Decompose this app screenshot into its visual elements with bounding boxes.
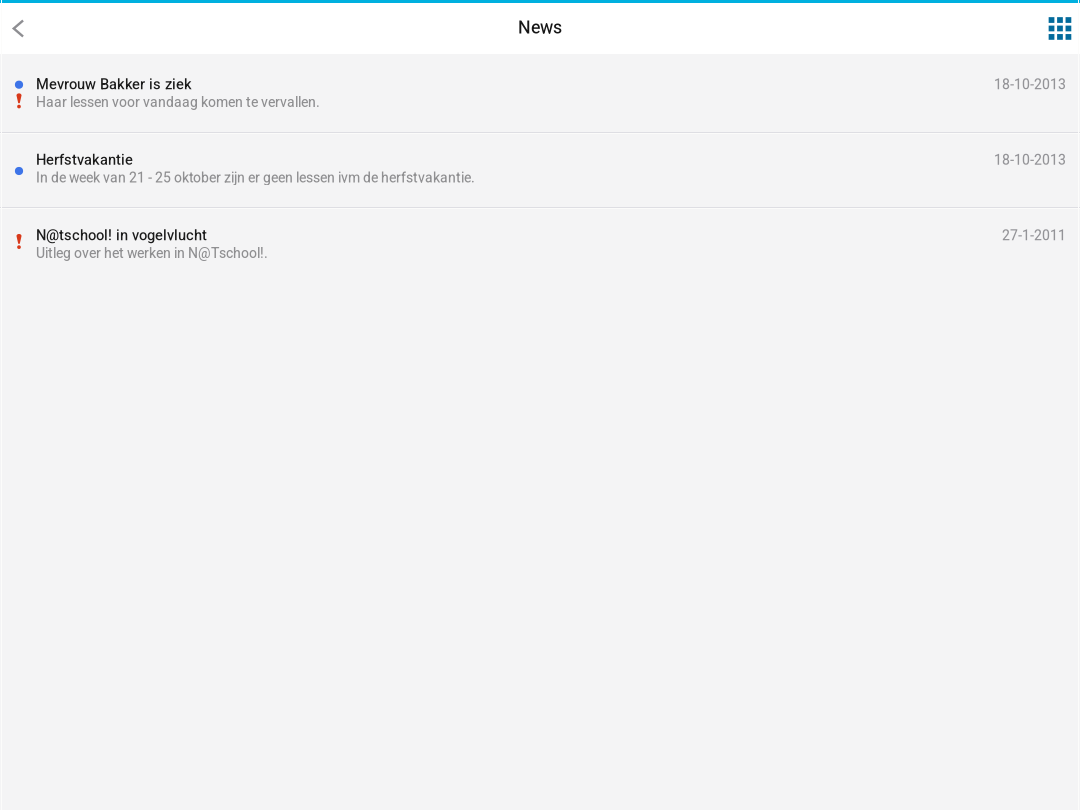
staticText: In de week van 21 - 25 oktober zijn er g…: [36, 169, 475, 186]
button[interactable]: Apps: [1040, 3, 1080, 54]
staticText: News: [518, 17, 562, 38]
staticText: Uitleg over het werken in N@Tschool!.: [36, 245, 268, 261]
button[interactable]: Back: [2, 3, 42, 54]
button[interactable]: Mevrouw Bakker is ziek: [0, 54, 1080, 132]
button[interactable]: Herfstvakantie: [0, 134, 1080, 207]
button[interactable]: N@tschool! in vogelvlucht: [0, 209, 1080, 283]
staticText: 27-1-2011: [1002, 227, 1066, 244]
staticText: 18-10-2013: [994, 152, 1066, 168]
staticText: Mevrouw Bakker is ziek: [36, 76, 192, 93]
staticText: Haar lessen voor vandaag komen te verval…: [36, 94, 320, 110]
staticText: Herfstvakantie: [36, 151, 133, 168]
staticText: 18-10-2013: [994, 76, 1066, 93]
staticText: N@tschool! in vogelvlucht: [36, 227, 207, 244]
